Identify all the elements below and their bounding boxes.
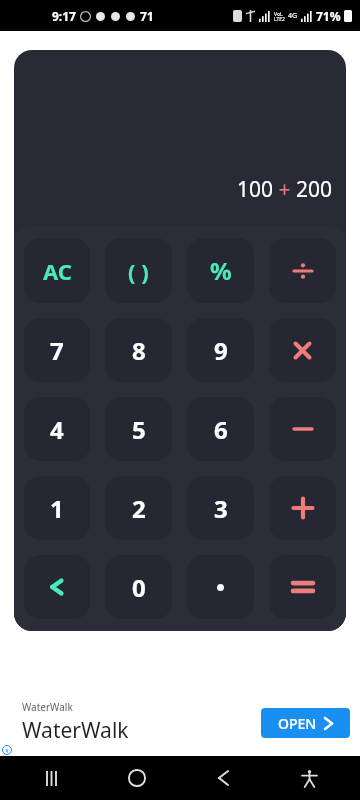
staticText: 1 <box>50 492 64 525</box>
button[interactable]: Minus <box>269 397 336 461</box>
button[interactable]: Home <box>94 756 180 800</box>
button[interactable]: ( ) <box>105 238 172 303</box>
button[interactable]: 5 <box>105 397 172 461</box>
staticText: 9 <box>214 334 228 367</box>
button[interactable]: AC <box>24 238 90 303</box>
button[interactable]: Backspace <box>24 555 90 619</box>
button[interactable]: 3 <box>187 476 254 540</box>
button[interactable]: Equals <box>269 555 336 619</box>
staticText: 4 <box>50 413 64 446</box>
button[interactable]: % <box>187 238 254 303</box>
staticText: 0 <box>132 571 146 604</box>
button[interactable]: WaterWalk <box>0 689 360 756</box>
button[interactable]: 9 <box>187 318 254 382</box>
staticText: 5 <box>132 413 146 446</box>
staticText: 71 <box>140 8 154 24</box>
staticText: 71% <box>316 8 341 24</box>
staticText: 8 <box>132 334 146 367</box>
staticText: AC <box>43 256 72 286</box>
button[interactable]: Recents <box>8 756 94 800</box>
button[interactable]: OPEN <box>261 708 350 738</box>
button[interactable]: Back <box>180 756 266 800</box>
staticText: VoL LTE2 <box>274 11 285 22</box>
button[interactable]: 1 <box>24 476 90 540</box>
button[interactable]: Multiply <box>269 318 336 382</box>
staticText: OPEN <box>278 714 317 733</box>
button[interactable]: Accessibility <box>266 756 352 800</box>
button[interactable]: Plus <box>269 476 336 540</box>
button[interactable]: 0 <box>105 555 172 619</box>
button[interactable]: 8 <box>105 318 172 382</box>
staticText: 7 <box>50 334 64 367</box>
button[interactable]: Divide <box>269 238 336 303</box>
staticText: % <box>210 254 232 287</box>
button[interactable]: Decimal point <box>187 555 254 619</box>
staticText: 4G <box>288 11 298 21</box>
staticText: 3 <box>214 492 228 525</box>
button[interactable]: 2 <box>105 476 172 540</box>
button[interactable]: 7 <box>24 318 90 382</box>
staticText: WaterWalk <box>22 716 129 745</box>
staticText: 6 <box>214 413 228 446</box>
staticText: WaterWalk <box>22 700 73 714</box>
button[interactable]: 6 <box>187 397 254 461</box>
button[interactable]: 4 <box>24 397 90 461</box>
staticText: 9:17 <box>52 8 76 24</box>
staticText: 2 <box>132 492 146 525</box>
staticText: ( ) <box>128 256 149 286</box>
staticText: 100 + 200 <box>237 175 333 204</box>
